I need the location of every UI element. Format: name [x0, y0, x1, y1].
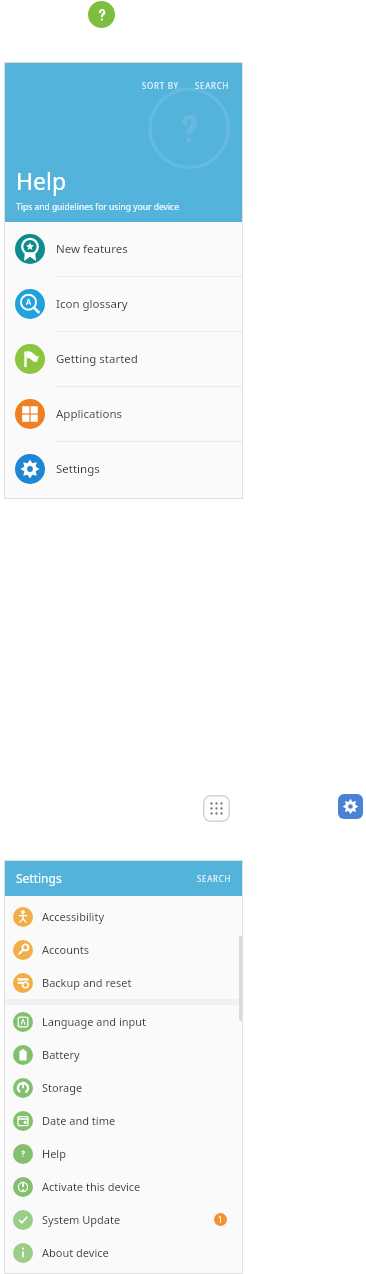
button[interactable]: Storage	[4, 1071, 243, 1104]
staticText: SEARCH	[197, 873, 232, 884]
button[interactable]: Settings	[338, 794, 363, 819]
staticText: Getting started	[56, 351, 138, 367]
staticText: Help	[42, 1146, 66, 1161]
staticText: Icon glossary	[56, 296, 128, 312]
staticText: Storage	[42, 1080, 83, 1095]
staticText: SORT BY	[142, 80, 179, 91]
staticText: Activate this device	[42, 1179, 141, 1194]
staticText: Date and time	[42, 1113, 116, 1128]
button[interactable]: System Update	[4, 1203, 243, 1236]
button[interactable]: Date and time	[4, 1104, 243, 1137]
button[interactable]: Language and input	[4, 1005, 243, 1038]
staticText: Applications	[56, 406, 123, 422]
button[interactable]: Battery	[4, 1038, 243, 1071]
button[interactable]: Settings	[4, 442, 243, 496]
button[interactable]: Accessibility	[4, 900, 243, 933]
staticText: System Update	[42, 1212, 121, 1227]
staticText: SEARCH	[195, 80, 230, 91]
staticText: Backup and reset	[42, 975, 132, 990]
staticText: Help	[16, 165, 67, 196]
staticText: Accessibility	[42, 909, 105, 924]
button[interactable]: Backup and reset	[4, 966, 243, 999]
button[interactable]: SORT BY	[138, 76, 183, 95]
button[interactable]: Applications	[4, 387, 243, 441]
staticText: Battery	[42, 1047, 80, 1062]
staticText: Settings	[16, 870, 62, 886]
button[interactable]: About device	[4, 1236, 243, 1269]
staticText: Tips and guidelines for using your devic…	[16, 201, 179, 213]
button[interactable]: Accounts	[4, 933, 243, 966]
button[interactable]: Help	[4, 1137, 243, 1170]
button[interactable]: Icon glossary	[4, 277, 243, 331]
staticText: Language and input	[42, 1014, 147, 1029]
staticText: Accounts	[42, 942, 90, 957]
button[interactable]: SEARCH	[191, 76, 234, 95]
button[interactable]: SEARCH	[186, 868, 243, 889]
button[interactable]: Getting started	[4, 332, 243, 386]
staticText: New features	[56, 241, 128, 257]
button[interactable]: Activate this device	[4, 1170, 243, 1203]
button[interactable]: Apps	[203, 795, 230, 822]
staticText: 1	[218, 1214, 223, 1225]
button[interactable]: Help	[88, 1, 115, 28]
staticText: About device	[42, 1245, 109, 1260]
staticText: Settings	[56, 461, 100, 477]
button[interactable]: New features	[4, 222, 243, 276]
